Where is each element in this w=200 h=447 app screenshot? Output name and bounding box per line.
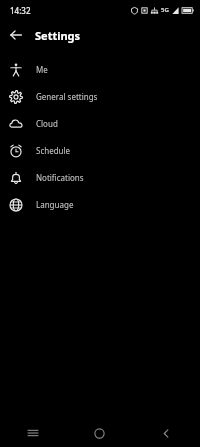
button[interactable]: Back: [133, 419, 200, 447]
staticText: 14:32: [10, 5, 31, 16]
staticText: Notifications: [36, 172, 84, 183]
button[interactable]: Me: [0, 56, 200, 83]
button[interactable]: Language: [0, 191, 200, 218]
staticText: 5G: [161, 6, 169, 14]
staticText: Schedule: [36, 145, 71, 156]
staticText: Language: [36, 199, 74, 210]
staticText: Cloud: [36, 118, 58, 129]
button[interactable]: Home: [66, 419, 133, 447]
button[interactable]: Cloud: [0, 110, 200, 137]
button[interactable]: General settings: [0, 83, 200, 110]
button[interactable]: Recent apps: [0, 419, 66, 447]
button[interactable]: Notifications: [0, 164, 200, 191]
button[interactable]: Schedule: [0, 137, 200, 164]
staticText: General settings: [36, 91, 98, 102]
staticText: Me: [36, 64, 48, 75]
staticText: Settings: [35, 28, 81, 43]
button[interactable]: Back: [6, 25, 26, 45]
